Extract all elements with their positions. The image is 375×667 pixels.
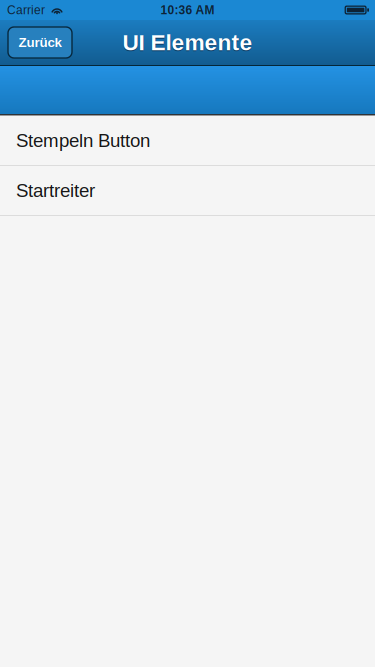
button[interactable]: Zurück: [8, 27, 72, 58]
staticText: 10:36 AM: [160, 3, 214, 17]
button[interactable]: Startreiter: [0, 166, 375, 215]
staticText: Zurück: [18, 35, 61, 50]
staticText: UI Elemente: [122, 30, 252, 55]
button[interactable]: Stempeln Button: [0, 116, 375, 165]
staticText: Stempeln Button: [16, 130, 150, 151]
staticText: Startreiter: [16, 180, 95, 201]
staticText: Carrier: [7, 3, 45, 17]
staticText: UI Elemente: [122, 31, 252, 56]
